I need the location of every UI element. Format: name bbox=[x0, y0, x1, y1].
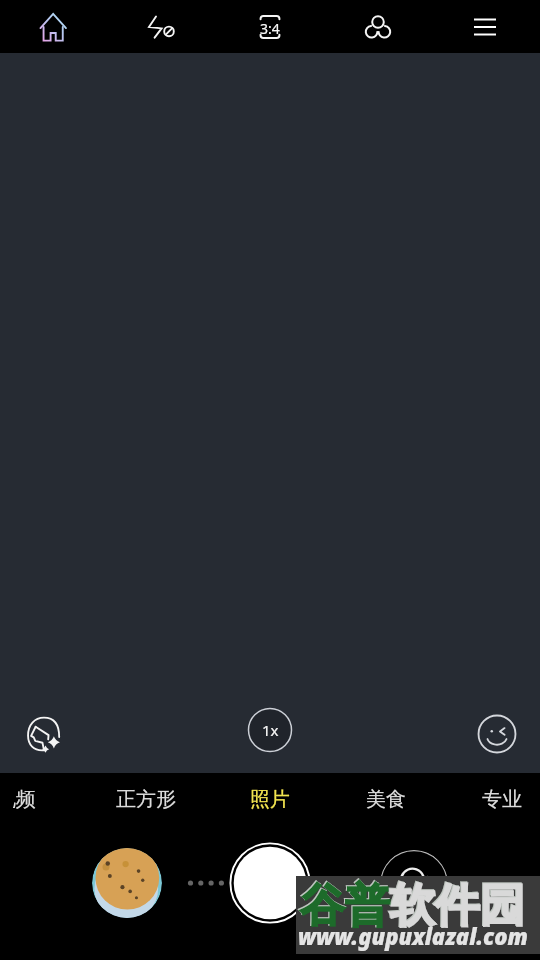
button[interactable]: Gallery bbox=[92, 848, 162, 918]
button[interactable]: Color filters bbox=[351, 0, 405, 53]
button[interactable]: Beauty mode bbox=[18, 708, 70, 760]
button[interactable]: 专业 bbox=[458, 773, 540, 825]
staticText: 软件园 bbox=[390, 878, 525, 935]
staticText: 照片 bbox=[250, 787, 290, 812]
button[interactable]: Flash off bbox=[134, 0, 188, 53]
button[interactable]: AI scene detection bbox=[26, 0, 80, 53]
button[interactable]: More settings bbox=[458, 0, 512, 53]
button[interactable]: Aspect ratio 3 to 4 bbox=[243, 0, 297, 53]
staticText: 1x bbox=[262, 720, 279, 740]
staticText: 美食 bbox=[366, 787, 406, 812]
button[interactable]: 美食 bbox=[342, 773, 430, 825]
button[interactable]: 视频 bbox=[13, 773, 73, 825]
button[interactable]: 照片 bbox=[226, 773, 314, 825]
staticText: 正方形 bbox=[116, 787, 176, 812]
button[interactable]: Take photo bbox=[226, 839, 314, 927]
button[interactable]: Stickers bbox=[473, 710, 521, 758]
button[interactable]: 正方形 bbox=[102, 773, 190, 825]
staticText: 视频 bbox=[13, 787, 36, 812]
staticText: 专业 bbox=[482, 787, 522, 812]
button[interactable]: 1x bbox=[246, 706, 294, 754]
staticText: 谷普软件园 bbox=[299, 877, 524, 934]
staticText: www.gupuxlazal.com bbox=[298, 921, 528, 951]
button[interactable]: Switch camera bbox=[380, 850, 448, 918]
staticText: 谷普 bbox=[300, 878, 390, 935]
staticText: 3:4 bbox=[260, 19, 280, 38]
